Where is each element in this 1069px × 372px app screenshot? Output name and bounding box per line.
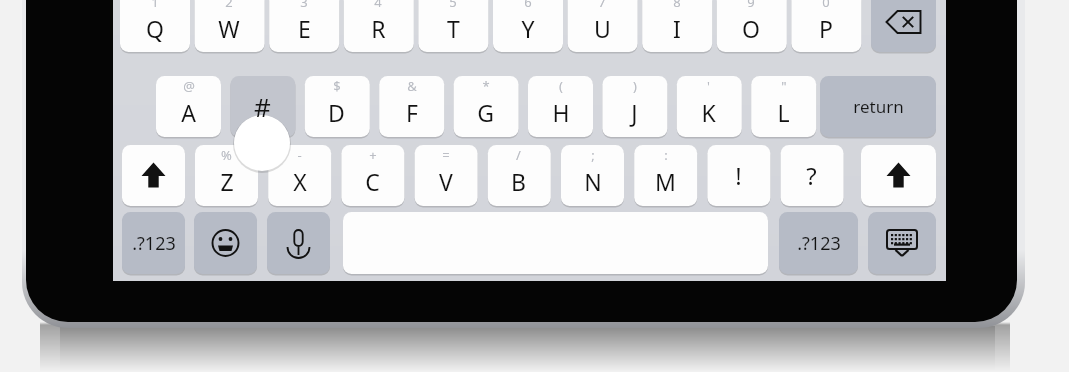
staticText: $ [333, 77, 341, 95]
staticText: 1 [151, 0, 159, 11]
staticText: 0 [822, 0, 830, 11]
staticText: E [298, 13, 311, 44]
staticText: U [594, 13, 611, 44]
staticText: .?123 [132, 231, 176, 256]
staticText: 8 [673, 0, 681, 11]
button[interactable]: U [567, 0, 637, 52]
button[interactable]: K [676, 76, 741, 137]
staticText: G [477, 97, 494, 128]
button[interactable]: M [634, 145, 697, 206]
staticText: N [584, 166, 602, 197]
button[interactable]: D [304, 76, 369, 137]
button[interactable]: .?123 [779, 212, 858, 274]
button[interactable]: ? [780, 145, 843, 206]
staticText: 9 [747, 0, 755, 11]
button[interactable]: Q [120, 0, 190, 52]
button[interactable]: O [716, 0, 786, 52]
staticText: Q [146, 13, 164, 44]
staticText: X [293, 166, 307, 197]
staticText: 5 [449, 0, 457, 11]
staticText: .?123 [797, 231, 841, 256]
staticText: W [218, 13, 240, 44]
staticText: ! [735, 159, 742, 192]
staticText: J [631, 97, 638, 128]
staticText: @ [183, 77, 195, 95]
staticText: return [853, 95, 904, 118]
staticText: " [781, 77, 787, 95]
button[interactable]: B [487, 145, 550, 206]
button[interactable]: F [379, 76, 444, 137]
staticText: & [407, 77, 417, 95]
staticText: 7 [598, 0, 606, 11]
staticText: P [819, 13, 833, 44]
staticText: 4 [374, 0, 382, 11]
button[interactable]: C [341, 145, 404, 206]
button[interactable]: L [751, 76, 816, 137]
staticText: H [552, 97, 570, 128]
staticText: 2 [225, 0, 233, 11]
staticText: F [406, 97, 418, 128]
button[interactable]: Z [195, 145, 258, 206]
staticText: C [365, 166, 380, 197]
button[interactable]: .?123 [122, 212, 185, 274]
button[interactable]: Hide keyboard [868, 212, 936, 274]
staticText: ' [707, 77, 710, 95]
staticText: ( [559, 77, 563, 95]
button[interactable]: # [230, 76, 295, 137]
staticText: T [447, 13, 460, 44]
staticText: 6 [524, 0, 532, 11]
staticText: M [655, 166, 676, 197]
staticText: # [254, 89, 271, 124]
button[interactable]: P [791, 0, 861, 52]
button[interactable]: Backspace [871, 0, 936, 52]
button[interactable]: E [269, 0, 339, 52]
button[interactable]: I [642, 0, 712, 52]
button[interactable]: W [194, 0, 264, 52]
button[interactable]: Emoji [194, 212, 257, 274]
button[interactable]: V [414, 145, 477, 206]
staticText: L [777, 97, 790, 128]
button[interactable]: J [602, 76, 667, 137]
staticText: V [439, 166, 453, 197]
button[interactable]: Shift [861, 145, 936, 206]
button[interactable]: Shift [122, 145, 185, 206]
staticText: / [516, 146, 521, 164]
button[interactable]: H [528, 76, 593, 137]
button[interactable]: A [156, 76, 221, 137]
staticText: 3 [300, 0, 308, 11]
staticText: ) [633, 77, 637, 95]
staticText: : [664, 146, 668, 164]
button[interactable]: X [268, 145, 331, 206]
staticText: Z [220, 166, 234, 197]
staticText: K [701, 97, 716, 128]
button[interactable]: G [453, 76, 518, 137]
staticText: ? [806, 159, 817, 192]
staticText: O [742, 13, 760, 44]
staticText: - [297, 146, 302, 164]
button[interactable]: R [343, 0, 413, 52]
staticText: = [442, 146, 450, 164]
staticText: + [369, 146, 377, 164]
staticText: * [482, 77, 490, 95]
button[interactable]: Y [493, 0, 563, 52]
staticText: D [328, 97, 345, 128]
button[interactable]: Dictate [267, 212, 330, 274]
staticText: % [221, 146, 232, 164]
staticText: ; [591, 146, 595, 164]
staticText: R [371, 13, 386, 44]
staticText: B [511, 166, 526, 197]
staticText: A [181, 97, 196, 128]
staticText: I [673, 13, 681, 44]
button[interactable]: T [418, 0, 488, 52]
staticText: Y [521, 13, 535, 44]
button[interactable]: N [561, 145, 624, 206]
button[interactable]: return [820, 76, 936, 137]
button[interactable]: ! [707, 145, 770, 206]
